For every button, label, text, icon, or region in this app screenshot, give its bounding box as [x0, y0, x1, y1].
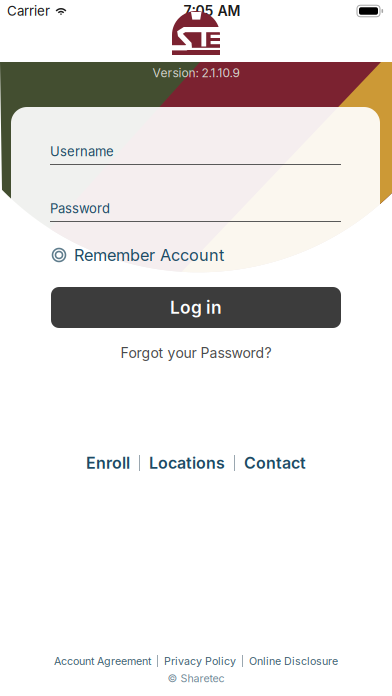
- staticText: Locations: [149, 453, 225, 473]
- button[interactable]: Contact: [235, 451, 315, 475]
- staticText: Remember Account: [74, 245, 224, 265]
- staticText: © Sharetec: [167, 672, 224, 685]
- staticText: 7:05 AM: [183, 2, 240, 19]
- staticText: Account Agreement: [54, 654, 151, 667]
- staticText: Online Disclosure: [249, 654, 338, 667]
- staticText: Version: 2.1.10.9: [152, 66, 239, 80]
- button[interactable]: Account Agreement: [48, 653, 157, 669]
- staticText: Privacy Policy: [164, 654, 236, 667]
- button[interactable]: Locations: [140, 451, 234, 475]
- button[interactable]: Online Disclosure: [243, 653, 344, 669]
- button[interactable]: Log in: [51, 287, 341, 328]
- staticText: Username: [50, 144, 114, 159]
- staticText: Log in: [170, 297, 222, 318]
- staticText: Password: [50, 201, 110, 216]
- staticText: Contact: [244, 453, 306, 473]
- staticText: Forgot your Password?: [120, 344, 271, 361]
- button[interactable]: Enroll: [77, 451, 139, 475]
- button[interactable]: Forgot your Password?: [51, 345, 341, 361]
- button[interactable]: Privacy Policy: [158, 653, 242, 669]
- staticText: Carrier: [7, 3, 50, 19]
- staticText: Enroll: [86, 453, 130, 473]
